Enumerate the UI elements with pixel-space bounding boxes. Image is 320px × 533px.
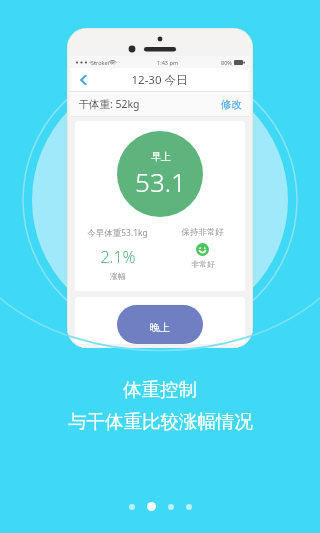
staticText: 修改 [221, 98, 242, 111]
staticText: 2.1% [100, 246, 136, 268]
staticText: Strokei [91, 59, 109, 66]
staticText: 体重控制 [123, 378, 197, 401]
staticText: 80% [221, 59, 232, 66]
staticText: 早上 [151, 150, 171, 163]
staticText: 今早体重53.1kg [87, 227, 148, 239]
staticText: 12-30 今日 [131, 72, 188, 88]
button[interactable]: Page [129, 504, 135, 510]
button[interactable]: Back [76, 72, 92, 88]
button[interactable]: Page 2 [147, 502, 156, 511]
button[interactable]: Page [168, 504, 174, 510]
button[interactable]: 晚上 [75, 297, 245, 344]
button[interactable]: 早上 [75, 121, 245, 291]
staticText: 53.1 [135, 164, 186, 199]
staticText: 1:43 pm [157, 59, 178, 66]
button[interactable]: Page [186, 504, 192, 510]
staticText: 非常好 [191, 259, 215, 269]
button[interactable]: 干体重: 52kg [78, 92, 242, 116]
staticText: 保持非常好 [181, 227, 224, 238]
staticText: 与干体重比较涨幅情况 [68, 410, 253, 433]
staticText: 干体重: 52kg [78, 97, 140, 111]
staticText: 晚上 [150, 321, 170, 334]
staticText: 涨幅 [110, 271, 126, 281]
